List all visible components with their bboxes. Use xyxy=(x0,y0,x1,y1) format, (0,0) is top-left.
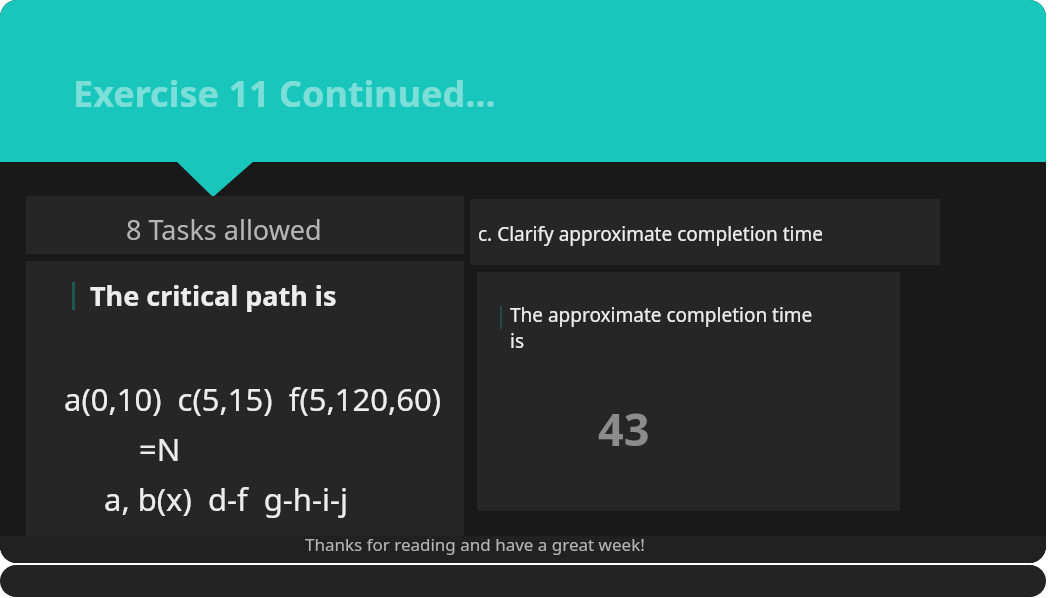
staticText: c. Clarify approximate completion time xyxy=(478,221,824,247)
button[interactable]: Slide: Exercise 11 Continued xyxy=(0,0,1046,563)
staticText: a(0,10) c(5,15) f(5,120,60) xyxy=(64,378,441,420)
button[interactable]: 8 Tasks allowed xyxy=(26,196,464,254)
staticText: The approximate completion time is xyxy=(510,302,813,353)
staticText: a, b(x) d-f g-h-i-j xyxy=(104,478,348,520)
staticText: 43 xyxy=(598,398,650,459)
button[interactable]: Slide toolbar xyxy=(0,565,1046,597)
staticText: Thanks for reading and have a great week… xyxy=(305,533,645,556)
staticText: The critical path is xyxy=(90,277,337,314)
button[interactable] xyxy=(477,272,900,511)
button[interactable] xyxy=(26,261,464,536)
button[interactable]: Exercise 11 Continued... xyxy=(0,0,1046,162)
staticText: 8 Tasks allowed xyxy=(126,211,322,248)
button[interactable]: Thanks for reading and have a great week… xyxy=(0,536,1046,563)
button[interactable]: c. Clarify approximate completion time xyxy=(470,199,940,265)
staticText: =N xyxy=(139,428,181,470)
staticText: Exercise 11 Continued... xyxy=(73,69,496,118)
